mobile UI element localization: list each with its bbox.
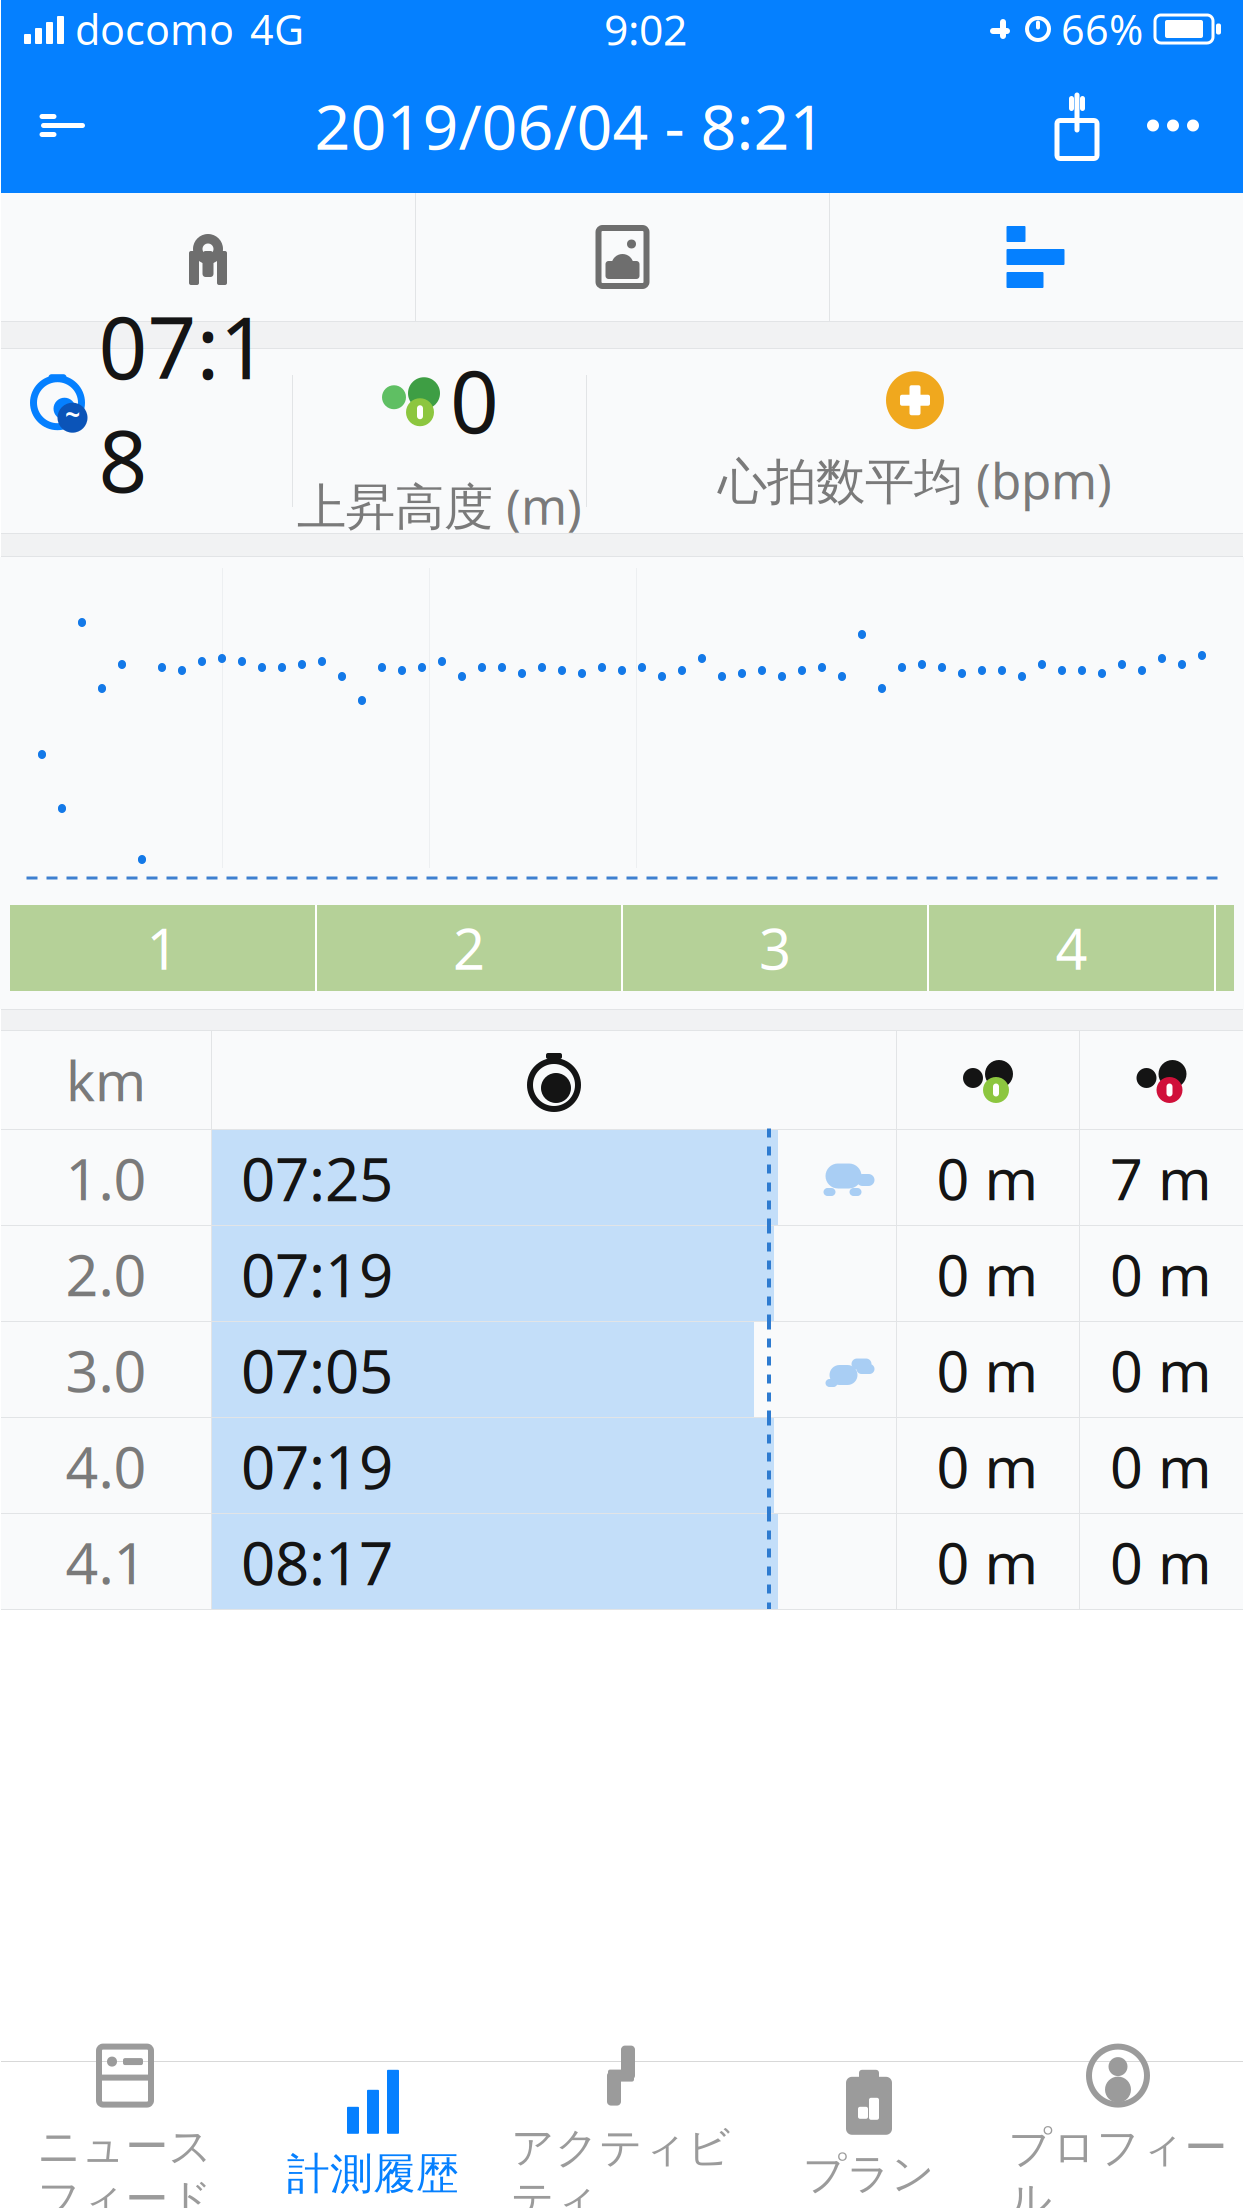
staticText: 2.0: [65, 1236, 146, 1312]
staticText: 4.0: [65, 1428, 146, 1504]
staticText: 0 m: [1110, 1524, 1212, 1600]
staticText: 1.0: [65, 1140, 146, 1216]
staticText: 07:18: [98, 289, 268, 516]
button[interactable]: 計測履歴: [249, 2062, 497, 2208]
button[interactable]: アクティビティ: [497, 2062, 745, 2208]
staticText: 平均ペース: [23, 532, 270, 593]
staticText: 0 m: [1110, 1332, 1212, 1408]
button[interactable]: プラン: [745, 2062, 993, 2208]
staticText: 0 m: [936, 1236, 1038, 1312]
staticText: 07:25: [241, 1138, 393, 1218]
staticText: 4G: [250, 2, 304, 56]
staticText: 3.0: [65, 1332, 146, 1408]
staticText: 心拍数平均 (bpm): [718, 447, 1112, 513]
staticText: プロフィール: [1008, 2122, 1227, 2208]
staticText: 4: [1055, 911, 1087, 985]
staticText: 0 m: [1110, 1428, 1212, 1504]
staticText: 07:05: [241, 1330, 393, 1410]
staticText: 2: [453, 911, 485, 985]
staticText: プラン: [803, 2148, 935, 2200]
staticText: ニュースフィード: [37, 2121, 212, 2208]
staticText: 計測履歴: [287, 2148, 459, 2200]
staticText: docomo: [75, 2, 234, 56]
button[interactable]: 1.0: [1, 1130, 1243, 1226]
staticText: 4.1: [65, 1524, 146, 1600]
staticText: 7 m: [1110, 1140, 1212, 1216]
staticText: 0 m: [936, 1332, 1038, 1408]
staticText: 66%: [1061, 2, 1143, 56]
staticText: km: [66, 1044, 146, 1116]
button[interactable]: 2.0: [1, 1226, 1243, 1322]
button[interactable]: Back: [35, 103, 91, 147]
staticText: 0: [450, 344, 499, 457]
button[interactable]: 3.0: [1, 1322, 1243, 1418]
staticText: 2019/06/04 - 8:21: [314, 84, 825, 167]
button[interactable]: 4.0: [1, 1418, 1243, 1514]
button[interactable]: More options: [1145, 103, 1201, 147]
staticText: アクティビティ: [511, 2122, 731, 2208]
staticText: 0 m: [936, 1524, 1038, 1600]
staticText: 1: [146, 911, 178, 985]
button[interactable]: Map: [1, 193, 415, 321]
staticText: 上昇高度 (m): [297, 473, 582, 538]
staticText: 3: [759, 911, 791, 985]
staticText: 07:19: [241, 1426, 393, 1506]
button[interactable]: Splits: [830, 193, 1243, 321]
staticText: 9:02: [604, 1, 687, 57]
staticText: 0 m: [1110, 1236, 1212, 1312]
staticText: 08:17: [241, 1522, 393, 1602]
staticText: 0 m: [936, 1428, 1038, 1504]
button[interactable]: プロフィール: [993, 2062, 1243, 2208]
staticText: 07:19: [241, 1234, 393, 1314]
staticText: ~: [65, 396, 80, 431]
button[interactable]: Share: [1049, 88, 1105, 162]
button[interactable]: Photos: [416, 193, 829, 321]
button[interactable]: 4.1: [1, 1514, 1243, 1610]
staticText: 0 m: [936, 1140, 1038, 1216]
button[interactable]: ニュースフィード: [1, 2062, 249, 2208]
